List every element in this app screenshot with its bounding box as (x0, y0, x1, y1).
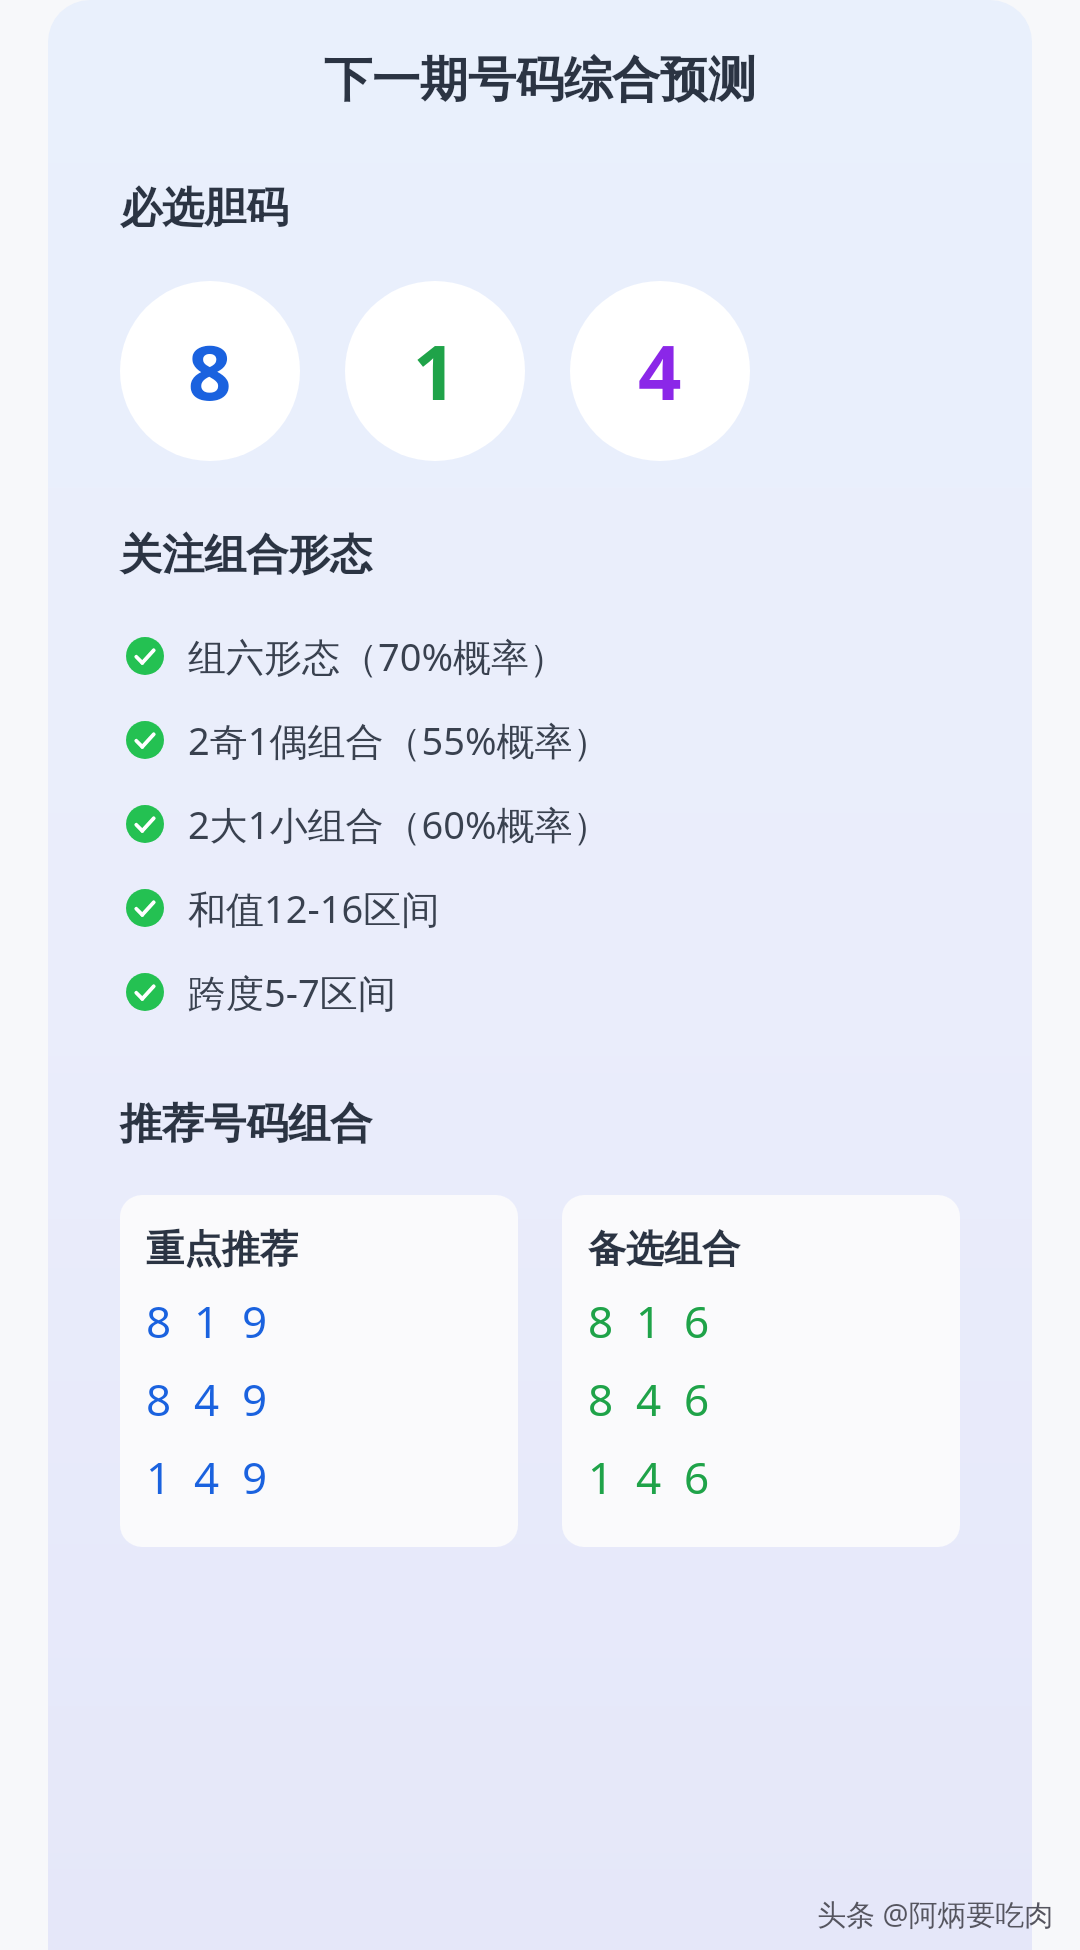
staticText: 8 1 6 (588, 1291, 710, 1351)
button[interactable]: 1 (345, 281, 525, 461)
button[interactable]: 2奇1偶组合（55%概率） (48, 698, 1032, 782)
staticText: 和值12-16区间 (188, 882, 440, 934)
staticText: 关注组合形态 (120, 529, 1032, 582)
staticText: 组六形态（70%概率） (188, 630, 568, 682)
staticText: 重点推荐 (146, 1225, 298, 1273)
staticText: 推荐号码组合 (120, 1098, 1032, 1151)
staticText: 必选胆码 (120, 182, 1032, 235)
button[interactable]: 和值12-16区间 (48, 866, 1032, 950)
staticText: 跨度5-7区间 (188, 966, 396, 1018)
staticText: 4 (638, 319, 682, 423)
button[interactable]: 4 (570, 281, 750, 461)
staticText: 8 (188, 319, 232, 423)
staticText: 1 4 6 (588, 1447, 710, 1507)
staticText: 2大1小组合（60%概率） (188, 798, 611, 850)
staticText: 2奇1偶组合（55%概率） (188, 714, 611, 766)
staticText: 8 1 9 (146, 1291, 268, 1351)
staticText: 1 (413, 319, 457, 423)
staticText: 头条 @阿炳要吃肉 (817, 1894, 1054, 1934)
button[interactable]: 2大1小组合（60%概率） (48, 782, 1032, 866)
button[interactable]: 备选组合 (562, 1195, 960, 1547)
button[interactable]: 8 (120, 281, 300, 461)
button[interactable]: 重点推荐 (120, 1195, 518, 1547)
staticText: 备选组合 (588, 1225, 740, 1273)
button[interactable]: 跨度5-7区间 (48, 950, 1032, 1034)
staticText: 8 4 9 (146, 1369, 268, 1429)
staticText: 8 4 6 (588, 1369, 710, 1429)
button[interactable]: 组六形态（70%概率） (48, 614, 1032, 698)
staticText: 1 4 9 (146, 1447, 268, 1507)
staticText: 下一期号码综合预测 (48, 50, 1032, 110)
